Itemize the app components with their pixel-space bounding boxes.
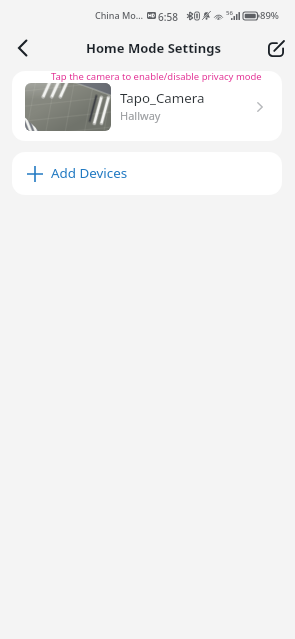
button[interactable]: Tapo_Camera <box>12 71 282 141</box>
button[interactable]: Edit <box>261 34 291 64</box>
button[interactable]: Back <box>6 32 38 64</box>
button[interactable]: Add Devices <box>12 152 282 195</box>
staticText: 89% <box>260 9 279 22</box>
staticText: Tap the camera to enable/disable privacy… <box>51 70 262 83</box>
staticText: 56 <box>226 9 233 17</box>
staticText: Home Mode Settings <box>86 39 221 57</box>
staticText: Tapo_Camera <box>120 89 205 107</box>
staticText: Hallway <box>120 108 161 123</box>
staticText: China Mo… <box>95 9 143 21</box>
staticText: 6:58 <box>158 10 178 24</box>
staticText: Add Devices <box>51 164 128 182</box>
